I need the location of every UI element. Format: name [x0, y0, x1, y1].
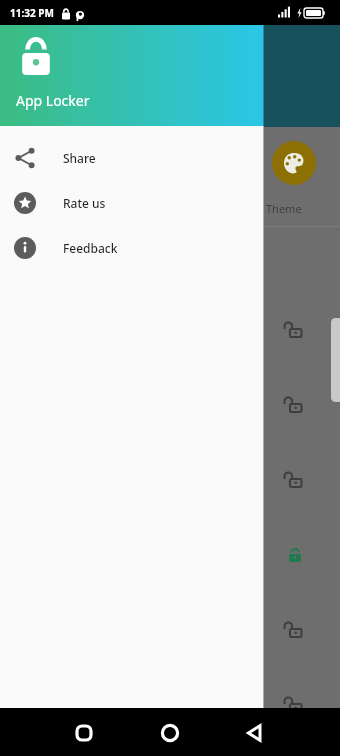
button[interactable]: Unlocked [286, 620, 304, 638]
button[interactable]: Home [160, 723, 180, 743]
button[interactable]: Feedback [0, 225, 264, 270]
button[interactable]: Locked [286, 545, 304, 563]
staticText: Theme [266, 201, 302, 216]
staticText: Rate us [63, 195, 106, 211]
button[interactable]: Recent apps [74, 723, 94, 743]
button[interactable]: Rate us [0, 180, 264, 225]
staticText: Feedback [63, 240, 118, 256]
button[interactable]: Unlocked [286, 395, 304, 413]
button[interactable]: Share [0, 135, 264, 180]
button[interactable]: Back [244, 723, 264, 743]
button[interactable]: Unlocked [286, 320, 304, 338]
button[interactable]: Theme [272, 141, 316, 185]
button[interactable]: Unlocked [286, 695, 304, 713]
button[interactable]: Unlocked [286, 470, 304, 488]
staticText: App Locker [16, 91, 90, 110]
staticText: Share [63, 150, 96, 166]
button[interactable]: App Locker [0, 25, 264, 126]
staticText: 11:32 PM [10, 6, 54, 20]
